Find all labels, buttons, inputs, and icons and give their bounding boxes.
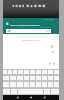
staticText: dictionary [40,26,51,29]
staticText: no results found [22,38,41,41]
button[interactable] [6,29,51,33]
staticText: Add to English Dictionary [10,23,40,26]
button[interactable]: Add to English Dictionary [3,18,59,29]
staticText: translation [43,18,55,21]
